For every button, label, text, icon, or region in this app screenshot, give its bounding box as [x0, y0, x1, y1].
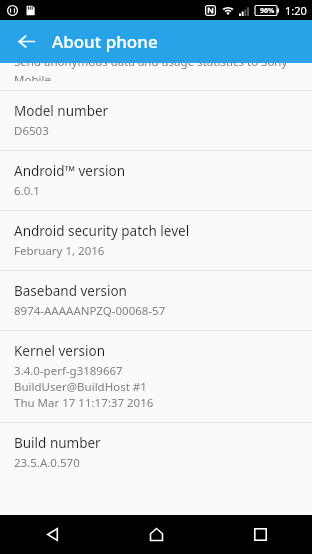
button[interactable]: Kernel version — [0, 331, 312, 422]
button[interactable]: Baseband version — [0, 271, 312, 330]
staticText: Build number — [14, 434, 101, 452]
staticText: 3.4.0-perf-g3189667 — [14, 363, 123, 379]
staticText: 23.5.A.0.570 — [14, 455, 80, 471]
button[interactable]: Android™ version — [0, 151, 312, 210]
staticText: Model number — [14, 102, 109, 120]
staticText: Baseband version — [14, 282, 127, 300]
button[interactable]: Build number — [0, 423, 312, 482]
staticText: Android security patch level — [14, 222, 190, 240]
button[interactable]: Recent apps — [208, 515, 312, 554]
staticText: Mobile — [14, 72, 51, 81]
staticText: Send anonymous data and usage statistics… — [14, 63, 288, 70]
staticText: BuildUser@BuildHost #1 — [14, 379, 147, 395]
button[interactable]: Navigate up — [0, 20, 52, 63]
button[interactable]: Send anonymous data and usage statistics… — [0, 63, 312, 90]
staticText: 1:20 — [285, 3, 307, 18]
button[interactable]: Model number — [0, 91, 312, 150]
staticText: About phone — [52, 30, 158, 53]
staticText: Kernel version — [14, 342, 106, 360]
staticText: 8974-AAAAANPZQ-00068-57 — [14, 303, 166, 319]
staticText: Android™ version — [14, 162, 125, 180]
button[interactable]: Back — [0, 515, 104, 554]
staticText: D6503 — [14, 123, 49, 139]
button[interactable]: Home — [104, 515, 208, 554]
staticText: 96% — [260, 6, 275, 16]
staticText: Thu Mar 17 11:17:37 2016 — [14, 395, 154, 411]
staticText: February 1, 2016 — [14, 243, 105, 259]
staticText: 6.0.1 — [14, 183, 40, 199]
button[interactable]: Android security patch level — [0, 211, 312, 270]
